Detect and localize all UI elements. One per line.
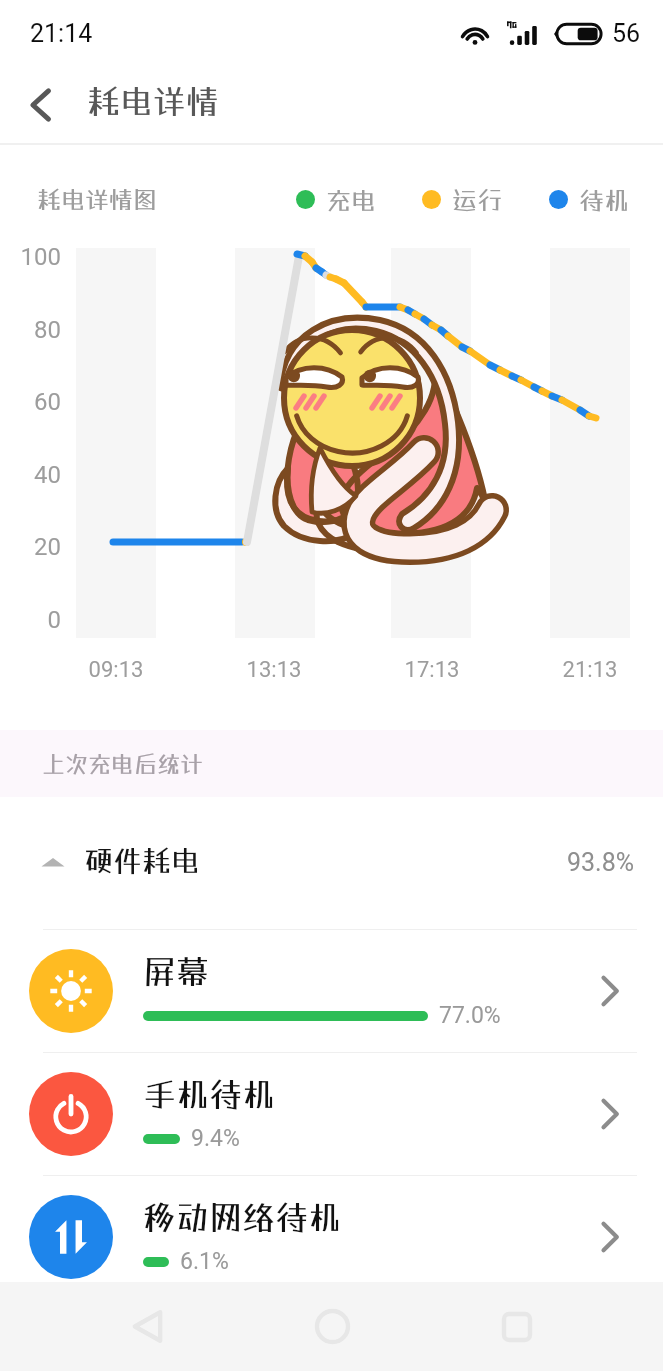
- staticText: 17:13: [382, 657, 482, 683]
- staticText: 21:14: [30, 19, 93, 48]
- staticText: 80: [0, 316, 61, 344]
- staticText: 13:13: [224, 657, 324, 683]
- button[interactable]: Recent apps: [474, 1282, 560, 1371]
- staticText: 移动网络待机: [143, 1198, 341, 1237]
- staticText: 手机待机: [143, 1075, 275, 1114]
- staticText: 耗电详情: [87, 82, 219, 121]
- staticText: 40: [0, 461, 61, 489]
- staticText: 100: [0, 243, 61, 271]
- staticText: 21:13: [540, 657, 640, 683]
- staticText: 耗电详情图: [37, 185, 157, 213]
- button[interactable]: Home: [289, 1282, 375, 1371]
- button[interactable]: 移动网络待机: [0, 1175, 663, 1298]
- staticText: 20: [0, 533, 61, 561]
- button[interactable]: 屏幕: [0, 929, 663, 1052]
- button[interactable]: Back: [0, 66, 80, 143]
- button[interactable]: 硬件耗电: [0, 822, 663, 902]
- staticText: 运行: [452, 185, 503, 214]
- staticText: 硬件耗电: [84, 844, 201, 878]
- staticText: 待机: [579, 185, 630, 214]
- staticText: 9.4%: [191, 1125, 240, 1152]
- staticText: 屏幕: [143, 952, 209, 991]
- staticText: 77.0%: [439, 1002, 501, 1029]
- staticText: 56: [612, 19, 641, 48]
- staticText: 充电: [326, 185, 377, 214]
- staticText: 93.8%: [567, 848, 635, 877]
- staticText: 0: [0, 606, 61, 634]
- staticText: 60: [0, 388, 61, 416]
- staticText: 09:13: [66, 657, 166, 683]
- staticText: 6.1%: [180, 1248, 229, 1275]
- button[interactable]: 手机待机: [0, 1052, 663, 1175]
- staticText: 上次充电后统计: [42, 750, 203, 777]
